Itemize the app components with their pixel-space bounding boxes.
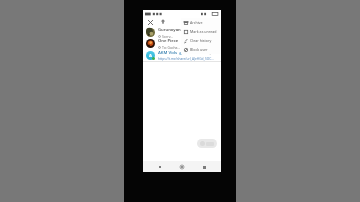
staticText: Tg: Gacha...	[162, 45, 181, 49]
button[interactable]: Clear history	[181, 36, 221, 45]
staticText: Gurunoyan	[158, 27, 181, 33]
staticText: A	[149, 53, 152, 59]
button[interactable]: Close	[146, 18, 154, 26]
button[interactable]: Recent apps	[199, 162, 209, 172]
button[interactable]: Home	[177, 162, 187, 172]
staticText: One Piece	[158, 38, 179, 44]
staticText: Block user	[190, 47, 208, 52]
staticText: Mark as unread	[190, 29, 217, 34]
button[interactable]: One Piece	[143, 38, 221, 49]
button[interactable]: A	[143, 49, 221, 61]
staticText: Archive	[190, 20, 203, 25]
staticText: Clear history	[190, 38, 212, 43]
button[interactable]: Back	[155, 162, 165, 172]
button[interactable]: Gurunoyan	[143, 27, 221, 38]
button[interactable]: Compose	[197, 139, 217, 148]
button[interactable]: Pin	[159, 18, 167, 26]
staticText: https://t.me/share/url_AJeHGd_SOC...	[158, 57, 214, 61]
button[interactable]: Block user	[181, 45, 221, 54]
staticText: Sorry...	[162, 34, 174, 38]
staticText: AKM Vids	[158, 50, 178, 56]
button[interactable]: Archive	[181, 18, 221, 27]
staticText: Jan 10	[210, 51, 218, 55]
button[interactable]: Mark as unread	[181, 27, 221, 36]
